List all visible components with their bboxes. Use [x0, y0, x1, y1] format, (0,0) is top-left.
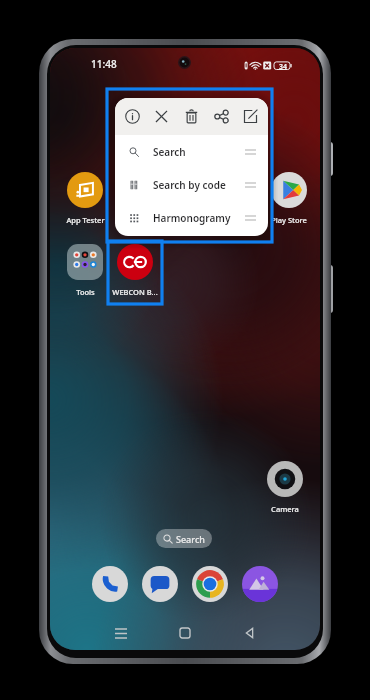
button[interactable]: App Tester [60, 172, 110, 225]
button[interactable]: Search [156, 529, 212, 548]
staticText: Search [153, 145, 186, 159]
staticText: Tools [76, 287, 95, 297]
button[interactable]: Close [149, 104, 174, 129]
button[interactable]: App info [120, 104, 145, 129]
staticText: Camera [271, 504, 299, 514]
button[interactable]: Phone [92, 566, 128, 602]
button[interactable]: Play Store [264, 172, 314, 225]
button[interactable]: WEBCON B... [110, 244, 160, 297]
button[interactable]: Search [115, 135, 268, 168]
button[interactable]: Photos [242, 566, 278, 602]
button[interactable]: Chrome [192, 566, 228, 602]
button[interactable]: Camera [260, 461, 310, 514]
button[interactable]: Home [174, 622, 196, 644]
button[interactable]: Tools [60, 244, 110, 297]
button[interactable]: Share [209, 104, 234, 129]
button[interactable]: Search by code [115, 168, 268, 201]
button[interactable]: Harmonogramy [115, 201, 268, 234]
staticText: Play Store [271, 215, 307, 225]
button[interactable]: Back [238, 622, 260, 644]
button[interactable]: Edit shortcut [238, 104, 263, 129]
button[interactable]: Uninstall [179, 104, 204, 129]
staticText: App Tester [66, 215, 105, 225]
staticText: Search [176, 533, 205, 545]
staticText: 11:48 [91, 57, 117, 71]
staticText: Harmonogramy [153, 211, 231, 225]
staticText: Search by code [153, 178, 226, 192]
button[interactable]: Recents [110, 622, 132, 644]
staticText: WEBCON B... [112, 287, 158, 297]
button[interactable]: Messages [142, 566, 178, 602]
staticText: 34 [279, 62, 288, 72]
